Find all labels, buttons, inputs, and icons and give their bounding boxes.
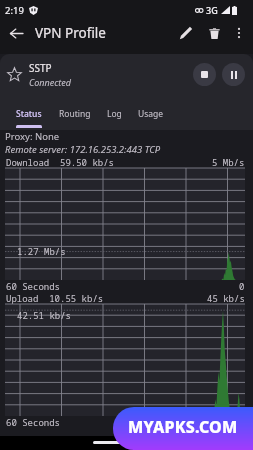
staticText: 0	[239, 416, 245, 428]
button[interactable]: Back	[0, 20, 32, 46]
staticText: Upload 10.55 kb/s	[6, 292, 104, 304]
staticText: 0	[239, 280, 245, 292]
staticText: Status	[16, 108, 42, 120]
staticText: Remote server: 172.16.253.2:443 TCP	[5, 143, 161, 156]
button[interactable]: Routing	[59, 94, 91, 130]
button[interactable]: Stop	[193, 63, 216, 86]
staticText: 60 Seconds	[6, 416, 61, 428]
staticText: 2:19	[5, 4, 24, 17]
staticText: Usage	[138, 108, 164, 120]
staticText: 3G	[206, 4, 218, 16]
button[interactable]: SSTP	[0, 54, 253, 94]
staticText: 5 Mb/s	[212, 156, 245, 168]
button[interactable]: Pause	[222, 63, 245, 86]
staticText: Routing	[59, 108, 91, 120]
staticText: MYAPKS.COM	[128, 416, 238, 438]
staticText: SSTP	[29, 61, 52, 75]
staticText: VPN Profile	[35, 24, 106, 42]
button[interactable]: More options	[228, 20, 250, 46]
staticText: Connected	[29, 76, 72, 88]
button[interactable]: Edit	[172, 20, 200, 46]
staticText: 1.27 Mb/s	[17, 245, 66, 257]
button[interactable]: Delete	[200, 20, 228, 46]
staticText: 42.51 kb/s	[17, 309, 72, 321]
staticText: Download 59.50 kb/s	[6, 156, 115, 168]
button[interactable]: Status	[16, 94, 42, 130]
staticText: 60 Seconds	[6, 280, 61, 292]
staticText: Log	[107, 108, 122, 120]
button[interactable]: Log	[107, 94, 122, 130]
button[interactable]: Usage	[138, 94, 164, 130]
staticText: Proxy: None	[5, 130, 60, 143]
staticText: 45 kb/s	[207, 292, 245, 304]
